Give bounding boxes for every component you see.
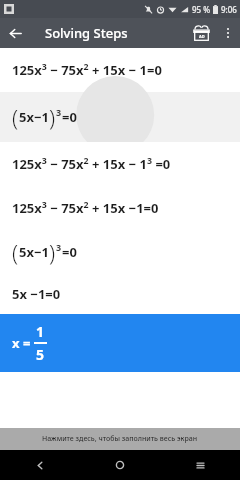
staticText: ( (12, 237, 19, 267)
staticText: x = (12, 334, 31, 352)
staticText: 5x −1=0 (12, 285, 61, 303)
staticText: 125x3 − 75x2 + 15x −1=0 (12, 199, 159, 217)
staticText: 95 % (192, 4, 211, 15)
button[interactable]: 125x3 − 75x2 + 15x −1=0 (0, 186, 240, 230)
button[interactable]: Back (0, 450, 80, 480)
button[interactable]: Recent apps (160, 450, 240, 480)
staticText: Solving Steps (45, 24, 128, 42)
button[interactable]: 5x −1=0 (0, 274, 240, 314)
staticText: ) (49, 237, 56, 267)
staticText: =0 (62, 243, 77, 261)
button[interactable]: More options (216, 21, 240, 45)
button[interactable]: ( (0, 230, 240, 274)
button[interactable]: Home (80, 450, 160, 480)
button[interactable]: 125x3 − 75x2 + 15x − 13 =0 (0, 142, 240, 186)
staticText: 125x3 − 75x2 + 15x − 1=0 (12, 61, 162, 79)
button[interactable]: 125x3 − 75x2 + 15x − 1=0 (0, 48, 240, 92)
staticText: 9:06 (221, 4, 237, 15)
staticText: 1 (36, 322, 45, 341)
staticText: AD (199, 34, 205, 39)
button[interactable]: Back (0, 18, 30, 48)
button[interactable]: Ad gift (186, 18, 216, 48)
button[interactable]: Нажмите здесь, чтобы заполнить весь экра… (0, 428, 240, 450)
staticText: ( (12, 102, 19, 132)
staticText: 3 (56, 241, 62, 253)
staticText: 125x3 − 75x2 + 15x − 13 =0 (12, 155, 171, 173)
staticText: 5x−1 (19, 108, 49, 126)
staticText: 5x−1 (19, 243, 49, 261)
staticText: ) (49, 102, 56, 132)
staticText: =0 (62, 108, 77, 126)
staticText: Нажмите здесь, чтобы заполнить весь экра… (42, 434, 198, 444)
button[interactable]: ( (0, 92, 240, 142)
staticText: 3 (56, 106, 62, 118)
staticText: 5 (36, 345, 45, 364)
button[interactable]: x = (0, 314, 240, 372)
